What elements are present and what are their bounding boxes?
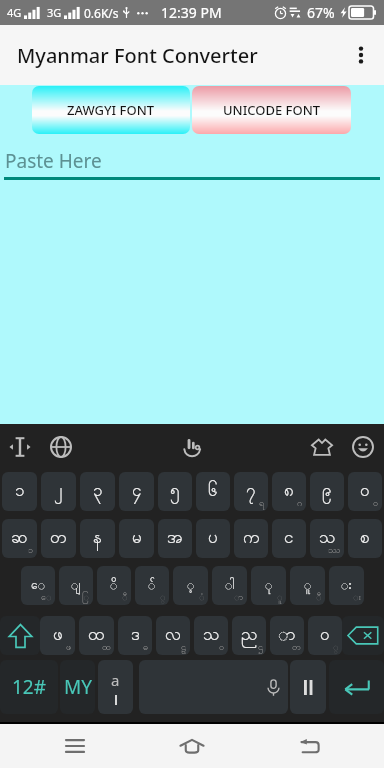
button[interactable]: Space xyxy=(139,660,288,714)
button[interactable]: ၈ xyxy=(272,472,306,511)
button[interactable]: း xyxy=(329,566,364,605)
staticText: ဂ xyxy=(297,497,303,510)
staticText: ၀ xyxy=(360,479,370,504)
staticText: ့ xyxy=(187,577,195,595)
staticText: ၂ xyxy=(54,479,63,504)
staticText: ဖ xyxy=(66,641,72,654)
staticText: 67% xyxy=(307,3,335,22)
staticText: သ xyxy=(319,526,336,551)
staticText: ၁ xyxy=(15,479,25,504)
button[interactable]: ျ xyxy=(59,566,93,605)
staticText: Myanmar Font Converter xyxy=(17,42,258,69)
staticText: ရ xyxy=(259,497,265,510)
staticText: း xyxy=(341,577,352,595)
button[interactable]: ၇ xyxy=(234,472,268,511)
button[interactable]: ့ xyxy=(173,566,208,605)
staticText: ု xyxy=(265,577,273,595)
button[interactable]: Shift xyxy=(0,616,40,655)
button[interactable]: UNICODE FONT xyxy=(192,86,351,134)
button[interactable]: ၅ xyxy=(158,472,192,511)
staticText: ၁ xyxy=(28,544,34,557)
button[interactable]: ၀ xyxy=(348,472,382,511)
button[interactable]: ု xyxy=(251,566,286,605)
button[interactable]: ZAWGYI FONT xyxy=(32,86,190,134)
button[interactable]: ါ xyxy=(212,566,247,605)
button[interactable]: ိ xyxy=(97,566,131,605)
button[interactable]: Enter xyxy=(329,660,384,714)
staticText: မ xyxy=(132,526,142,551)
button[interactable]: Theme xyxy=(309,434,335,460)
staticText: ် xyxy=(148,577,156,595)
staticText: Paste Here xyxy=(5,148,102,174)
button[interactable]: ဆ xyxy=(2,519,37,558)
button[interactable]: Change language xyxy=(48,434,74,460)
button[interactable]: Backspace xyxy=(342,616,384,655)
staticText: း xyxy=(353,591,361,604)
button[interactable]: န xyxy=(80,519,115,558)
staticText: ီ xyxy=(316,591,322,604)
button[interactable]: ပ xyxy=(196,519,230,558)
button[interactable]: Switch xyxy=(290,660,326,714)
button[interactable]: ၉ xyxy=(310,472,344,511)
button[interactable]: သ xyxy=(310,519,344,558)
staticText: ဒ xyxy=(131,623,140,648)
button[interactable]: ေ xyxy=(21,566,55,605)
button[interactable]: Emoji xyxy=(350,434,376,460)
button[interactable]: Back xyxy=(285,724,333,768)
button[interactable]: အ xyxy=(158,519,192,558)
button[interactable]: MY xyxy=(60,660,95,714)
button[interactable]: င xyxy=(272,519,306,558)
button[interactable]: တ xyxy=(41,519,76,558)
button[interactable]: 12# xyxy=(0,660,58,714)
staticText: 0.6K/s xyxy=(84,5,119,21)
button[interactable]: ၆ xyxy=(196,472,230,511)
button[interactable]: ၃ xyxy=(80,472,115,511)
staticText: ာ xyxy=(234,591,244,604)
button[interactable]: မ xyxy=(119,519,154,558)
button[interactable]: ာ xyxy=(270,616,304,655)
staticText: ၃ xyxy=(93,479,103,504)
button[interactable]: စ xyxy=(348,519,382,558)
staticText: ဆ xyxy=(11,526,28,551)
button[interactable]: လ xyxy=(156,616,190,655)
button[interactable]: ၄ xyxy=(119,472,154,511)
staticText: န xyxy=(93,526,102,551)
button[interactable]: More options xyxy=(338,25,384,85)
staticText: ဖ xyxy=(53,623,63,648)
staticText: ဿ xyxy=(328,544,341,557)
staticText: ၅ xyxy=(170,479,180,504)
staticText: သ xyxy=(203,623,220,648)
button[interactable]: ၁ xyxy=(2,472,37,511)
button[interactable]: ူ xyxy=(290,566,325,605)
button[interactable]: Handwriting xyxy=(179,434,205,460)
staticText: 12# xyxy=(12,674,47,700)
staticText: 4G xyxy=(7,5,22,20)
staticText: ေ xyxy=(41,591,52,604)
staticText: င xyxy=(284,526,294,551)
button[interactable]: ဝ xyxy=(308,616,342,655)
staticText: ေ xyxy=(31,577,46,595)
button[interactable]: သ xyxy=(194,616,228,655)
button[interactable]: ် xyxy=(135,566,169,605)
staticText: ည xyxy=(241,623,258,648)
staticText: က xyxy=(243,526,260,551)
button[interactable]: ည xyxy=(232,616,266,655)
button[interactable]: ဒ xyxy=(118,616,152,655)
button[interactable]: Recents xyxy=(51,724,99,768)
staticText: ၈ xyxy=(284,479,294,504)
staticText: ၇ xyxy=(246,479,256,504)
staticText: ၀ xyxy=(219,641,225,654)
button[interactable]: ထ xyxy=(79,616,114,655)
button[interactable]: က xyxy=(234,519,268,558)
staticText: ဠ xyxy=(181,641,187,654)
staticText: ၆ xyxy=(208,479,218,504)
staticText: ္ xyxy=(333,641,339,654)
staticText: ထ xyxy=(102,641,111,654)
button[interactable]: Text cursor xyxy=(7,434,33,460)
button[interactable]: Home xyxy=(168,724,216,768)
button[interactable]: a xyxy=(98,660,133,714)
button[interactable]: ဖ xyxy=(40,616,75,655)
staticText: ZAWGYI FONT xyxy=(67,101,155,119)
button[interactable]: ၂ xyxy=(41,472,76,511)
staticText: ၉ xyxy=(322,479,332,504)
